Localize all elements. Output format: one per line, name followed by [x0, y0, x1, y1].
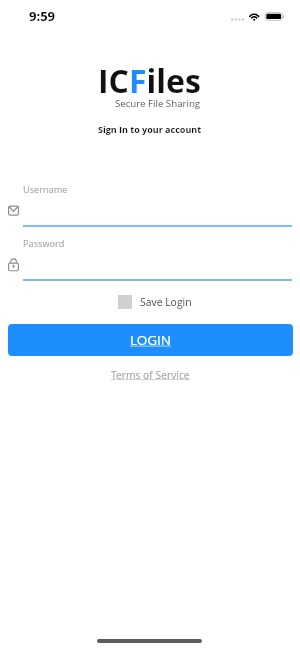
- staticText: Save Login: [140, 295, 192, 309]
- staticText: Username: [23, 183, 68, 196]
- staticText: 9:59: [29, 7, 55, 25]
- button[interactable]: LOGIN: [8, 324, 293, 356]
- button[interactable]: Password: [6, 237, 294, 282]
- staticText: Sign In to your account: [98, 123, 202, 135]
- button[interactable]: Terms of Service: [108, 365, 193, 385]
- button[interactable]: Save Login: [118, 295, 192, 309]
- staticText: Secure File Sharing: [115, 97, 201, 110]
- staticText: LOGIN: [130, 331, 172, 349]
- staticText: Password: [23, 237, 65, 250]
- staticText: ICFiles: [98, 59, 201, 103]
- button[interactable]: Username: [6, 183, 294, 228]
